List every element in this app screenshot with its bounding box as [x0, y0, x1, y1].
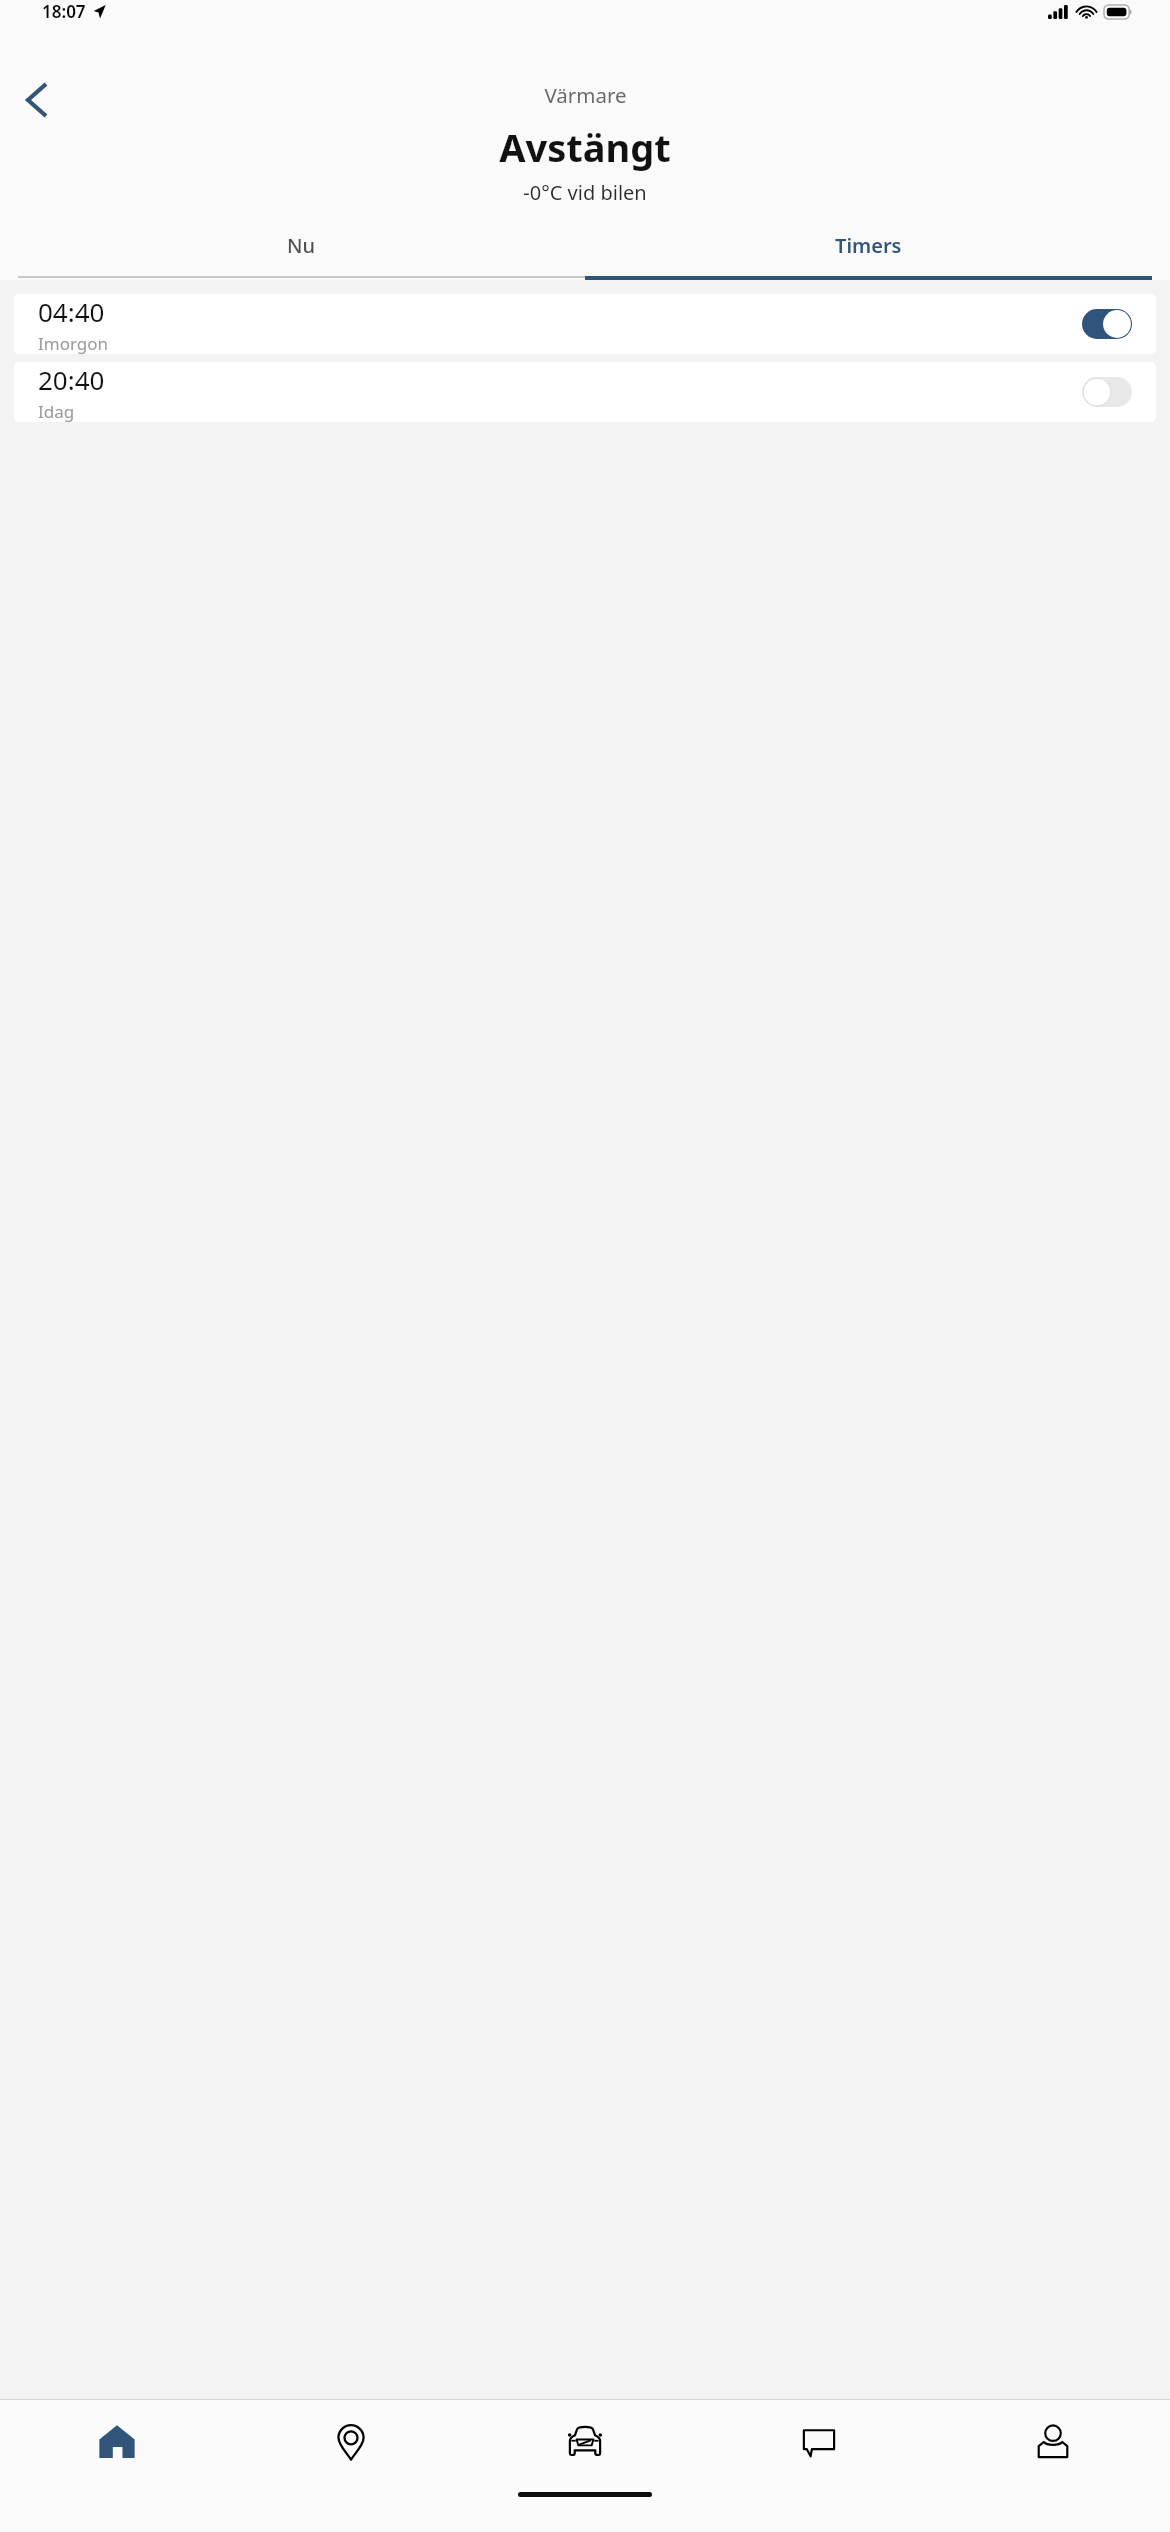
- button[interactable]: 04:40: [14, 294, 1156, 354]
- staticText: Timers: [835, 232, 902, 259]
- staticText: Nu: [287, 232, 316, 259]
- staticText: 20:40: [38, 362, 105, 397]
- staticText: Imorgon: [38, 332, 109, 354]
- button[interactable]: Back: [8, 71, 66, 129]
- button[interactable]: Car: [468, 2400, 702, 2484]
- staticText: 04:40: [38, 294, 105, 329]
- staticText: 18:07: [42, 0, 86, 23]
- button[interactable]: Timer off: [1082, 377, 1132, 407]
- button[interactable]: Map: [234, 2400, 468, 2484]
- staticText: Avstängt: [499, 121, 671, 173]
- button[interactable]: Profile: [936, 2400, 1170, 2484]
- button[interactable]: Nu: [18, 224, 585, 278]
- button[interactable]: Timer on: [1082, 309, 1132, 339]
- button[interactable]: Timers: [585, 224, 1152, 280]
- button[interactable]: 20:40: [14, 362, 1156, 422]
- button[interactable]: Home: [0, 2400, 234, 2484]
- button[interactable]: Messages: [702, 2400, 936, 2484]
- staticText: Värmare: [544, 81, 627, 109]
- staticText: Idag: [38, 400, 75, 422]
- staticText: -0°C vid bilen: [523, 179, 647, 206]
